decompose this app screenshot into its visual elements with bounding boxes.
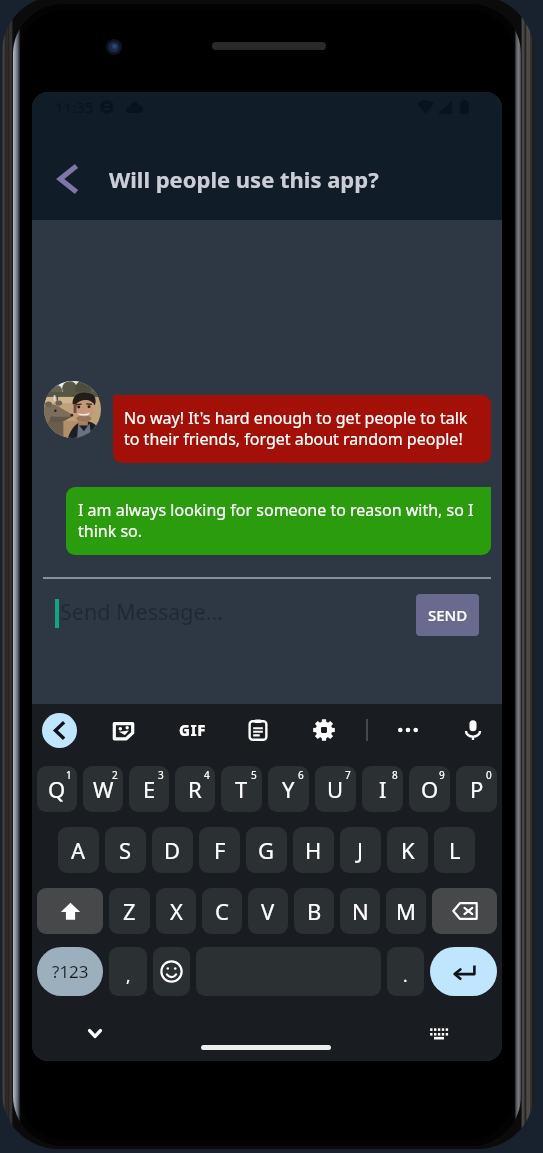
button[interactable]: Y [268,766,309,812]
button[interactable]: , [109,947,147,996]
staticText: O [421,774,439,804]
button[interactable]: E [129,766,169,812]
staticText: R [188,774,202,804]
button[interactable]: F [199,827,240,873]
staticText: , [126,964,131,987]
button[interactable]: H [293,827,334,873]
button[interactable]: Settings [306,708,341,752]
button[interactable]: W [83,766,123,812]
button[interactable]: Switch keyboard [416,1011,461,1056]
staticText: V [261,896,275,926]
button[interactable]: Shift [37,888,103,934]
button[interactable]: Emoji [153,947,190,996]
staticText: 8 [392,768,398,782]
staticText: Will people use this app? [109,164,379,194]
staticText: M [396,896,416,926]
staticText: Y [282,774,295,804]
button[interactable]: SEND [416,594,479,636]
staticText: 1 [66,768,72,782]
staticText: W [93,774,114,804]
button[interactable]: More [390,708,425,752]
staticText: 4 [204,768,210,782]
button[interactable]: Sticker [106,708,141,752]
staticText: J [357,835,364,865]
button[interactable]: Enter [430,947,497,996]
button[interactable]: L [434,827,475,873]
staticText: K [401,835,415,865]
button[interactable]: I am always looking for someone to reaso… [66,487,491,555]
button[interactable]: S [105,827,146,873]
staticText: Q [48,774,66,804]
button[interactable]: Z [109,888,150,934]
staticText: I am always looking for someone to reaso… [78,499,479,542]
button[interactable]: Q [37,766,77,812]
staticText: G [258,835,275,865]
staticText: 3 [158,768,164,782]
staticText: A [71,835,86,865]
staticText: F [214,835,226,865]
staticText: X [170,896,183,926]
button[interactable]: X [156,888,196,934]
button[interactable]: M [386,888,426,934]
button[interactable]: O [409,766,450,812]
button[interactable]: Voice input [455,708,490,752]
button[interactable]: A [58,827,99,873]
button[interactable]: GIF [175,708,210,752]
button[interactable]: T [221,766,262,812]
staticText: B [307,896,322,926]
staticText: D [164,835,181,865]
staticText: U [327,774,344,804]
button[interactable]: Backspace [432,888,497,934]
staticText: 0 [486,768,492,782]
staticText: T [235,774,248,804]
staticText: 2 [112,768,118,782]
staticText: 5 [251,768,257,782]
button[interactable]: P [456,766,497,812]
staticText: Send Message... [60,597,223,626]
staticText: S [119,835,132,865]
button[interactable]: C [202,888,242,934]
staticText: GIF [179,720,207,740]
staticText: N [352,896,369,926]
button[interactable]: K [387,827,428,873]
button[interactable]: . [387,947,424,996]
button[interactable]: B [294,888,334,934]
button[interactable]: Back [42,708,77,752]
button[interactable]: R [175,766,215,812]
staticText: L [449,835,461,865]
staticText: Z [123,896,136,926]
button[interactable]: I [362,766,403,812]
button[interactable]: N [340,888,380,934]
staticText: . [403,964,408,987]
button[interactable]: Back [44,157,88,201]
staticText: E [143,774,156,804]
staticText: SEND [428,605,468,625]
staticText: I [379,774,387,804]
button[interactable]: No way! It's hard enough to get people t… [113,395,491,463]
staticText: ?123 [52,960,89,983]
button[interactable]: U [315,766,356,812]
button[interactable]: Hide keyboard [72,1011,117,1056]
staticText: H [305,835,322,865]
staticText: P [470,774,484,804]
staticText: No way! It's hard enough to get people t… [124,407,480,450]
button[interactable]: J [340,827,381,873]
staticText: 6 [298,768,304,782]
button[interactable]: ?123 [37,947,103,996]
staticText: C [215,896,229,926]
button[interactable]: G [246,827,287,873]
staticText: 7 [345,768,351,782]
button[interactable]: D [152,827,193,873]
staticText: 9 [439,768,445,782]
button[interactable]: Clipboard [240,708,275,752]
button[interactable]: V [248,888,288,934]
